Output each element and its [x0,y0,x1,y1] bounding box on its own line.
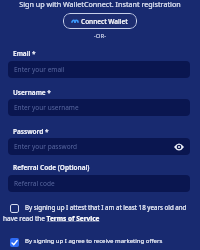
staticText: Enter your password [14,142,78,151]
staticText: Username * [13,88,51,97]
staticText: have read the Terms of Service [3,214,100,223]
button[interactable]: have read the Terms of Service [3,214,100,223]
staticText: -OR- [0,32,200,40]
staticText: Enter your email [14,65,65,74]
button[interactable] [10,238,19,247]
staticText: Referral Code (Optional) [13,163,90,172]
button[interactable] [10,204,19,213]
staticText: Connect Wallet [81,17,128,26]
staticText: Sign up with WalletConnect. Instant regi… [0,0,200,9]
button[interactable]: Enter your password [8,138,190,155]
button[interactable]: Connect Wallet [63,13,137,29]
button[interactable]: Enter your email [8,61,190,78]
staticText: Password * [13,127,49,136]
staticText: Email * [13,49,36,58]
button[interactable]: Enter your username [8,99,190,116]
staticText: Referral code [14,179,55,188]
button[interactable]: Referral code [8,175,190,192]
staticText: By signing up I agree to receive marketi… [25,237,163,245]
staticText: Enter your username [14,103,79,112]
staticText: By signing up I attest that I am at leas… [25,203,187,211]
